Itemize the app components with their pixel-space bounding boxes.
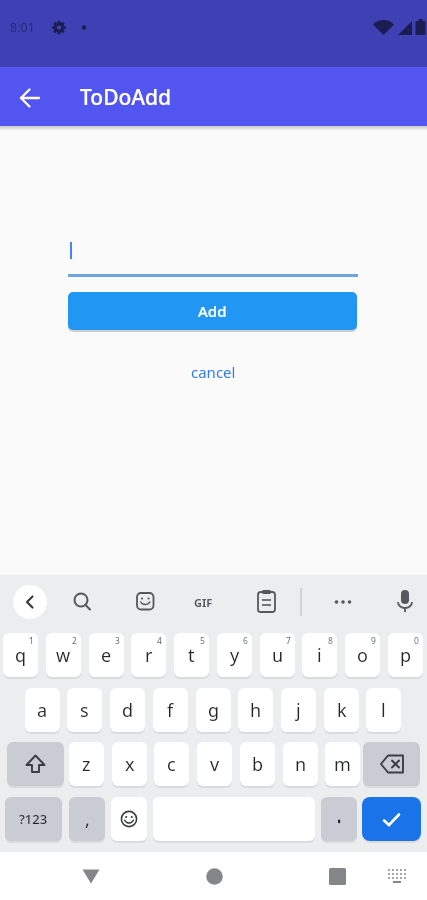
button[interactable]: d bbox=[110, 688, 145, 732]
staticText: Add bbox=[198, 301, 227, 321]
button[interactable]: z bbox=[69, 742, 104, 786]
staticText: n bbox=[295, 752, 307, 777]
button[interactable]: i bbox=[302, 633, 337, 677]
staticText: 9 bbox=[371, 635, 376, 647]
button[interactable]: j bbox=[281, 688, 316, 732]
staticText: l bbox=[381, 698, 386, 723]
staticText: 4 bbox=[157, 635, 162, 647]
button[interactable]: f bbox=[153, 688, 188, 732]
button[interactable]: t bbox=[174, 633, 209, 677]
staticText: ?123 bbox=[19, 810, 48, 828]
staticText: s bbox=[80, 698, 89, 723]
button[interactable]: m bbox=[325, 742, 360, 786]
staticText: d bbox=[122, 698, 134, 723]
staticText: GIF bbox=[194, 595, 213, 610]
staticText: o bbox=[357, 643, 368, 668]
button[interactable]: , bbox=[69, 797, 105, 841]
button[interactable]: q bbox=[3, 633, 38, 677]
button[interactable]: ?123 bbox=[5, 797, 62, 841]
staticText: w bbox=[56, 643, 71, 668]
staticText: a bbox=[37, 698, 48, 723]
button[interactable] bbox=[313, 852, 361, 900]
staticText: v bbox=[210, 752, 220, 777]
staticText: p bbox=[400, 643, 412, 668]
button[interactable] bbox=[13, 585, 47, 619]
staticText: y bbox=[230, 643, 240, 668]
button[interactable]: b bbox=[240, 742, 275, 786]
staticText: 3 bbox=[115, 635, 120, 647]
button[interactable]: e bbox=[89, 633, 124, 677]
staticText: ToDoAdd bbox=[80, 83, 172, 112]
staticText: b bbox=[252, 752, 264, 777]
staticText: 8 bbox=[328, 635, 333, 647]
staticText: 6 bbox=[243, 635, 248, 647]
button[interactable]: a bbox=[25, 688, 60, 732]
staticText: x bbox=[125, 752, 135, 777]
staticText: , bbox=[85, 807, 90, 832]
staticText: i bbox=[317, 643, 322, 668]
button[interactable] bbox=[321, 797, 357, 841]
staticText: m bbox=[334, 752, 351, 777]
staticText: r bbox=[145, 643, 153, 668]
button[interactable]: cancel bbox=[183, 358, 244, 386]
button[interactable]: h bbox=[238, 688, 273, 732]
button[interactable]: g bbox=[196, 688, 231, 732]
staticText: c bbox=[167, 752, 176, 777]
button[interactable]: r bbox=[131, 633, 166, 677]
button[interactable]: c bbox=[154, 742, 189, 786]
button[interactable]: Add bbox=[68, 292, 357, 330]
button[interactable]: w bbox=[46, 633, 81, 677]
button[interactable]: v bbox=[197, 742, 232, 786]
button[interactable]: k bbox=[324, 688, 359, 732]
button[interactable] bbox=[190, 852, 238, 900]
button[interactable] bbox=[67, 852, 115, 900]
staticText: 7 bbox=[286, 635, 291, 647]
staticText: 8:01 bbox=[10, 19, 35, 36]
staticText: t bbox=[188, 643, 195, 668]
button[interactable]: n bbox=[283, 742, 318, 786]
button[interactable]: o bbox=[345, 633, 380, 677]
staticText: u bbox=[272, 643, 284, 668]
staticText: f bbox=[167, 698, 174, 723]
button[interactable] bbox=[7, 742, 64, 786]
staticText: k bbox=[337, 698, 347, 723]
button[interactable] bbox=[12, 80, 48, 116]
staticText: 1 bbox=[29, 635, 34, 647]
button[interactable]: s bbox=[67, 688, 102, 732]
button[interactable]: u bbox=[260, 633, 295, 677]
staticText: 2 bbox=[72, 635, 77, 647]
button[interactable]: l bbox=[366, 688, 401, 732]
button[interactable] bbox=[377, 854, 417, 898]
button[interactable]: y bbox=[217, 633, 252, 677]
button[interactable] bbox=[111, 797, 147, 841]
staticText: j bbox=[296, 698, 301, 723]
staticText: z bbox=[82, 752, 91, 777]
staticText: h bbox=[250, 698, 262, 723]
staticText: cancel bbox=[191, 362, 236, 382]
staticText: g bbox=[208, 698, 220, 723]
staticText: 0 bbox=[414, 635, 419, 647]
button[interactable]: p bbox=[388, 633, 423, 677]
button[interactable] bbox=[362, 797, 421, 841]
button[interactable] bbox=[363, 742, 420, 786]
staticText: 5 bbox=[200, 635, 205, 647]
button[interactable]: x bbox=[112, 742, 147, 786]
staticText: e bbox=[101, 643, 112, 668]
staticText: q bbox=[15, 643, 27, 668]
